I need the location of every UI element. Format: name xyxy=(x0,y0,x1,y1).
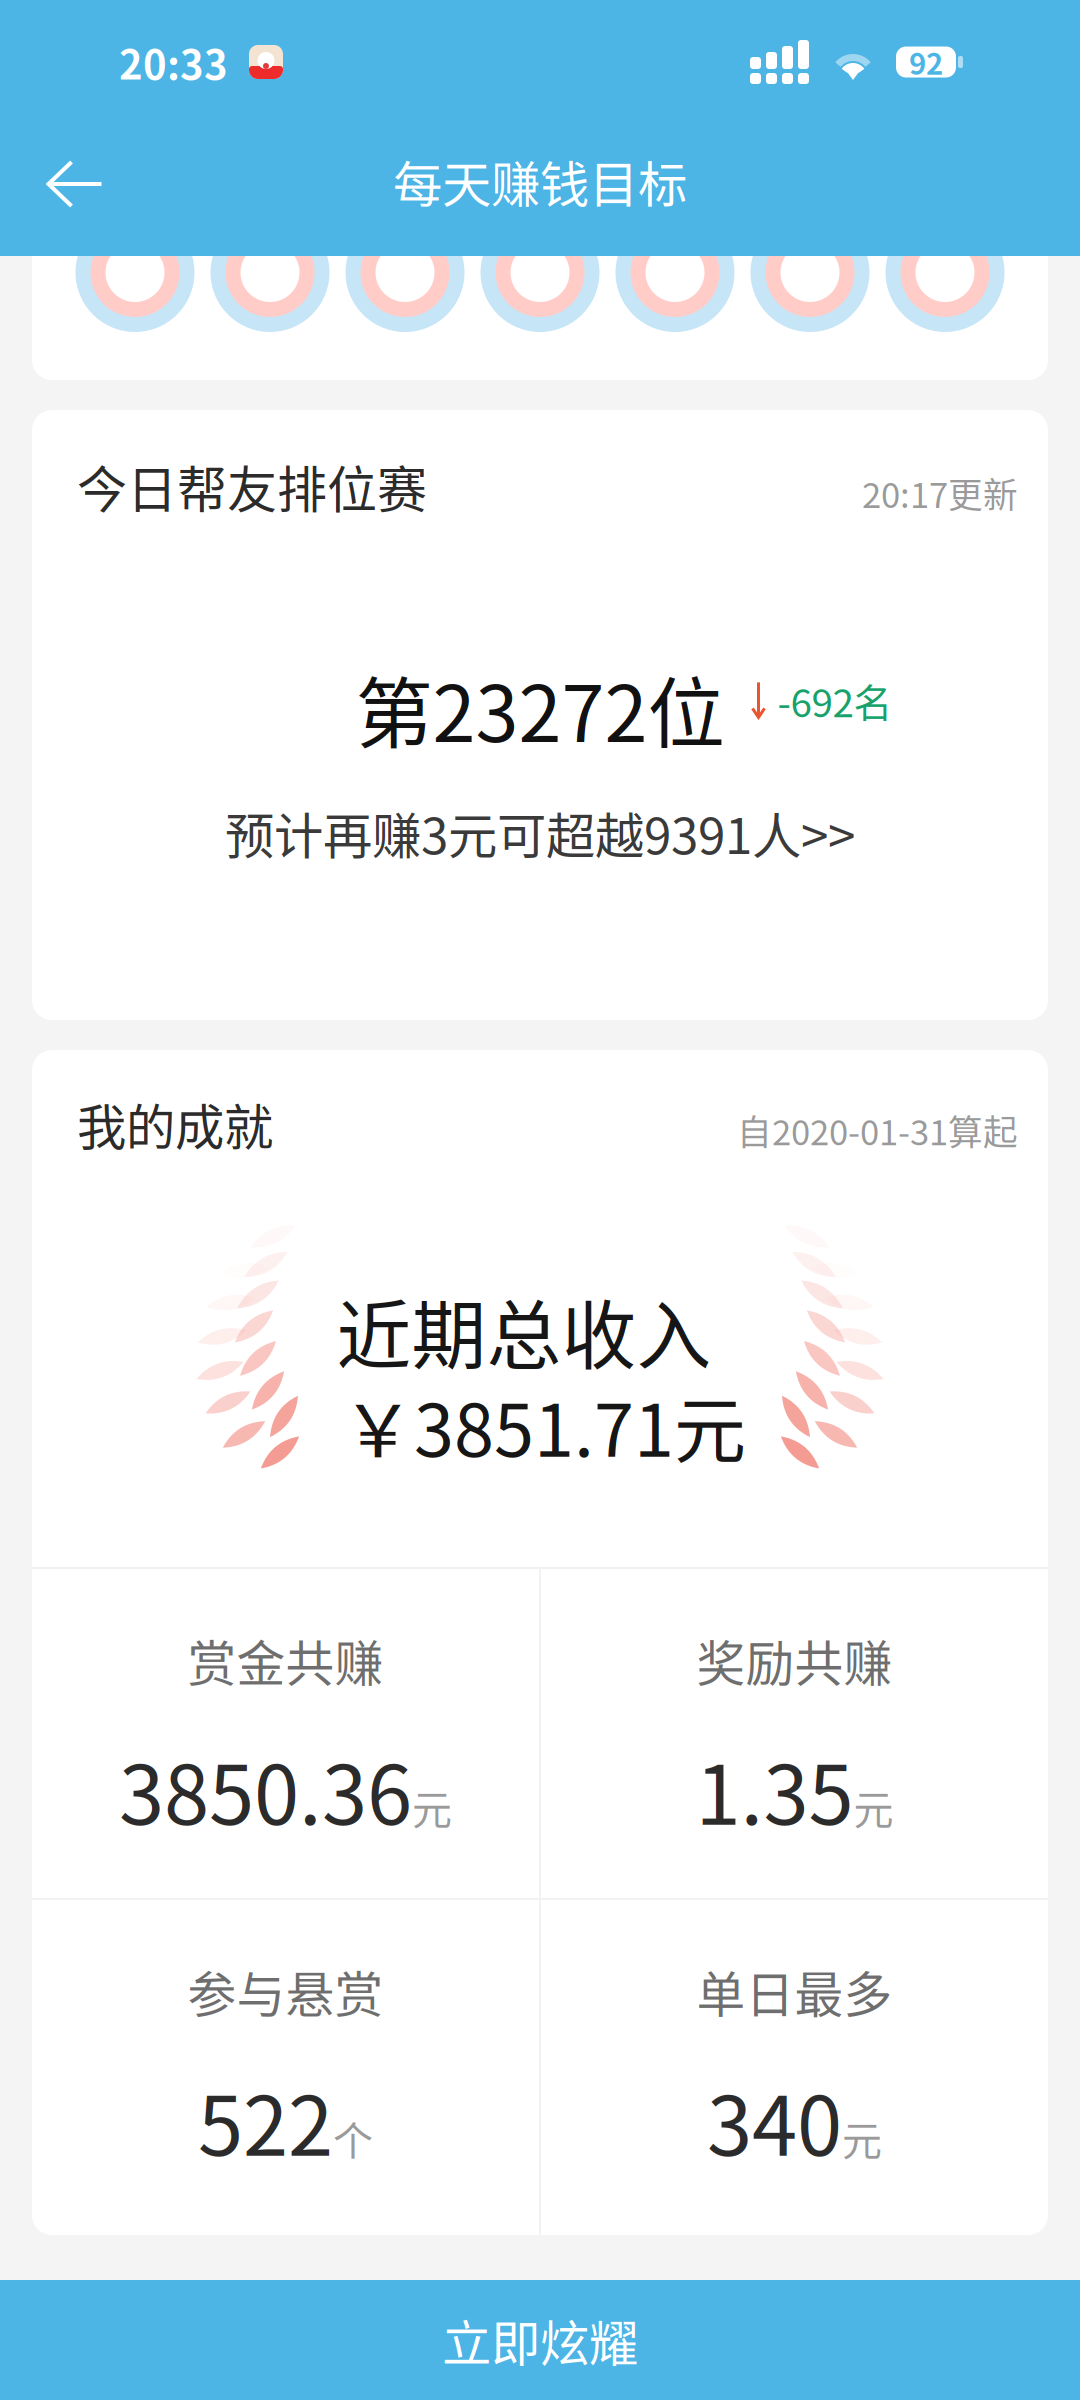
staticText: 我的成就 xyxy=(77,1088,273,1159)
staticText: 340 xyxy=(707,2061,842,2179)
staticText: 元 xyxy=(853,1778,893,1836)
staticText: 522 xyxy=(198,2061,333,2179)
staticText: 元 xyxy=(412,1778,452,1836)
staticText: 20:33 xyxy=(119,33,228,91)
staticText: 预计再赚3元可超越9391人>> xyxy=(225,797,855,868)
staticText: -692名 xyxy=(777,672,892,728)
staticText: 20:17更新 xyxy=(862,468,1018,518)
staticText: 第23272位 xyxy=(355,652,724,764)
staticText: 参与悬赏 xyxy=(187,1956,383,2026)
button[interactable]: 预计再赚3元可超越9391人>> xyxy=(32,802,1048,862)
staticText: 每天赚钱目标 xyxy=(393,145,687,217)
staticText: 1.35 xyxy=(695,1730,853,1848)
staticText: 单日最多 xyxy=(696,1956,892,2026)
staticText: 近期总收入 xyxy=(336,1276,711,1384)
staticText: 3850.36 xyxy=(119,1730,412,1848)
button[interactable]: 立即炫耀 xyxy=(0,2280,1080,2400)
staticText: 自2020-01-31算起 xyxy=(737,1105,1018,1155)
staticText: 奖励共赚 xyxy=(696,1625,892,1695)
staticText: ￥3851.71元 xyxy=(342,1373,746,1478)
button[interactable]: 返回 xyxy=(0,124,150,256)
staticText: 个 xyxy=(333,2109,373,2167)
staticText: 赏金共赚 xyxy=(187,1625,383,1695)
staticText: 元 xyxy=(842,2109,882,2167)
staticText: 今日帮友排位赛 xyxy=(77,450,427,522)
staticText: 立即炫耀 xyxy=(442,2304,638,2376)
staticText: 92 xyxy=(909,41,943,83)
